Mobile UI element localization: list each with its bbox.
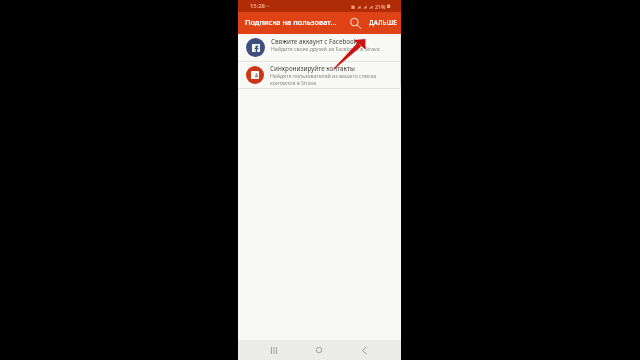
button[interactable]: ДАЛЬШЕ xyxy=(364,16,401,30)
staticText: Найдите своих друзей из Facebook в Strav… xyxy=(271,45,380,52)
button[interactable]: Home xyxy=(309,340,329,360)
staticText: ДАЛЬШЕ xyxy=(369,18,397,26)
staticText: Подписка на пользоват… xyxy=(245,17,340,27)
button[interactable]: Search xyxy=(346,14,364,32)
staticText: 21% xyxy=(375,3,386,10)
staticText: Свяжите аккаунт с Facebook xyxy=(271,37,358,45)
staticText: Найдите пользователей из вашего списка к… xyxy=(270,72,397,87)
button[interactable]: Recent apps xyxy=(264,340,284,360)
staticText: Синхронизируйте контакты xyxy=(270,64,355,72)
button[interactable]: Свяжите аккаунт с Facebook xyxy=(238,34,401,61)
staticText: 15:28 xyxy=(250,2,265,10)
button[interactable]: Back xyxy=(354,340,374,360)
button[interactable]: Синхронизируйте контакты xyxy=(238,62,401,88)
